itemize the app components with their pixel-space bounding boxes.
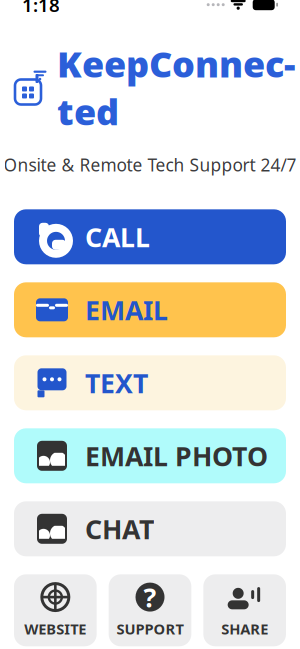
button[interactable]: EMAIL — [14, 282, 286, 337]
staticText: 1:18 — [22, 0, 60, 17]
staticText: KeepConnected — [57, 40, 295, 135]
staticText: EMAIL PHOTO — [85, 438, 268, 473]
staticText: ? — [143, 579, 156, 615]
staticText: TEXT — [85, 365, 148, 400]
staticText: EMAIL — [85, 292, 168, 327]
button[interactable]: ? — [109, 574, 191, 646]
button[interactable]: WEBSITE — [14, 574, 97, 646]
staticText: WEBSITE — [24, 619, 86, 639]
button[interactable]: CALL — [14, 209, 286, 264]
staticText: SUPPORT — [116, 619, 183, 639]
button[interactable]: SHARE — [203, 574, 286, 646]
staticText: CHAT — [85, 511, 154, 546]
button[interactable]: CHAT — [14, 501, 286, 556]
staticText: Onsite & Remote Tech Support 24/7 — [3, 153, 296, 176]
staticText: CALL — [85, 219, 150, 254]
staticText: SHARE — [221, 619, 268, 639]
button[interactable]: TEXT — [14, 355, 286, 410]
button[interactable]: EMAIL PHOTO — [14, 428, 286, 483]
